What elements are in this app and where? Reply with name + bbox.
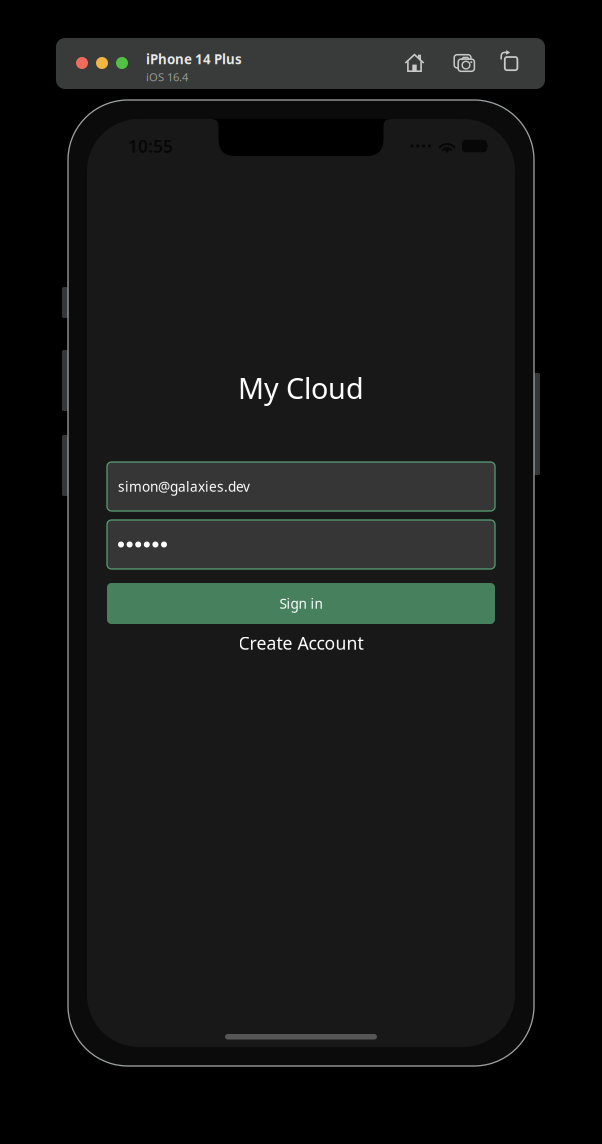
- staticText: iOS 16.4: [146, 69, 188, 84]
- button[interactable]: simon@galaxies.dev: [107, 462, 495, 511]
- button[interactable]: Screenshot: [454, 54, 475, 72]
- button[interactable]: Create Account: [107, 628, 495, 658]
- button[interactable]: Record Screen: [500, 51, 518, 71]
- staticText: iPhone 14 Plus: [146, 50, 242, 68]
- button[interactable]: Close: [76, 57, 88, 69]
- button[interactable]: Sign in: [107, 583, 495, 624]
- button[interactable]: [107, 520, 495, 569]
- staticText: simon@galaxies.dev: [118, 477, 250, 496]
- button[interactable]: Minimise: [96, 57, 108, 69]
- staticText: 10:55: [128, 134, 173, 158]
- staticText: Create Account: [238, 631, 363, 655]
- staticText: Sign in: [279, 594, 322, 613]
- button[interactable]: Home: [404, 53, 424, 73]
- staticText: My Cloud: [238, 368, 364, 407]
- button[interactable]: Zoom: [116, 57, 128, 69]
